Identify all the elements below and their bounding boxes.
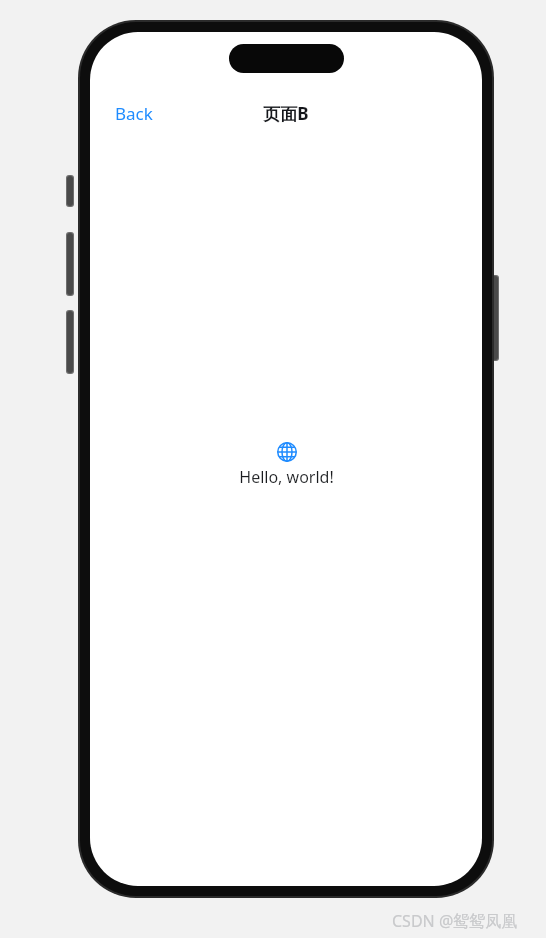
other: Globe bbox=[277, 442, 297, 462]
staticText: Hello, world! bbox=[239, 466, 334, 488]
staticText: Back bbox=[115, 102, 153, 125]
staticText: CSDN @鸳鸳凤凰 bbox=[392, 910, 518, 932]
staticText: 页面B bbox=[263, 102, 309, 125]
button[interactable]: Back bbox=[106, 96, 162, 131]
